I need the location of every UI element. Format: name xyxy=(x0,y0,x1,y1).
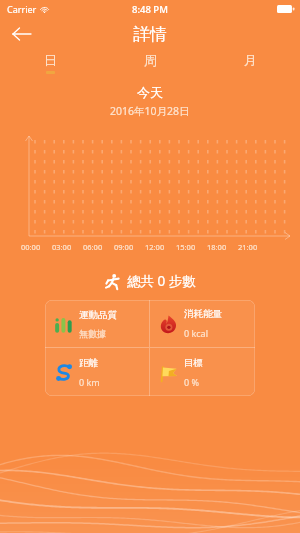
staticText: 0 km xyxy=(79,376,100,388)
staticText: 12:00 xyxy=(145,242,165,252)
staticText: 詳情 xyxy=(133,24,167,45)
staticText: 2016年10月28日 xyxy=(110,104,190,118)
staticText: 消耗能量 xyxy=(184,308,222,320)
staticText: 運動品質 xyxy=(79,309,117,321)
staticText: 無數據 xyxy=(79,328,106,339)
staticText: 日 xyxy=(44,52,57,68)
button[interactable]: Back xyxy=(0,18,44,50)
button[interactable]: 目標 xyxy=(150,348,255,396)
staticText: 0 kcal xyxy=(184,327,208,339)
button[interactable]: 運動品質 xyxy=(45,300,149,347)
button[interactable]: 距離 xyxy=(45,348,149,396)
staticText: 今天 xyxy=(137,84,163,100)
staticText: 00:00 xyxy=(21,242,41,252)
button[interactable]: 周 xyxy=(100,50,200,76)
button[interactable]: 日 xyxy=(0,50,100,76)
staticText: 03:00 xyxy=(52,242,72,252)
staticText: Carrier xyxy=(7,3,37,15)
staticText: 21:00 xyxy=(238,242,258,252)
staticText: 距離 xyxy=(79,357,98,369)
button[interactable]: 消耗能量 xyxy=(150,300,255,347)
staticText: 06:00 xyxy=(83,242,103,252)
button[interactable]: 總共 0 步數 xyxy=(0,272,300,290)
button[interactable]: 月 xyxy=(200,50,300,76)
staticText: 8:48 PM xyxy=(132,3,168,16)
staticText: 18:00 xyxy=(207,242,227,252)
staticText: 月 xyxy=(244,52,257,68)
staticText: 目標 xyxy=(184,357,203,369)
staticText: 總共 0 步數 xyxy=(127,272,196,290)
staticText: 15:00 xyxy=(176,242,196,252)
staticText: 0 % xyxy=(184,376,199,388)
staticText: 09:00 xyxy=(114,242,134,252)
staticText: 周 xyxy=(144,52,157,68)
